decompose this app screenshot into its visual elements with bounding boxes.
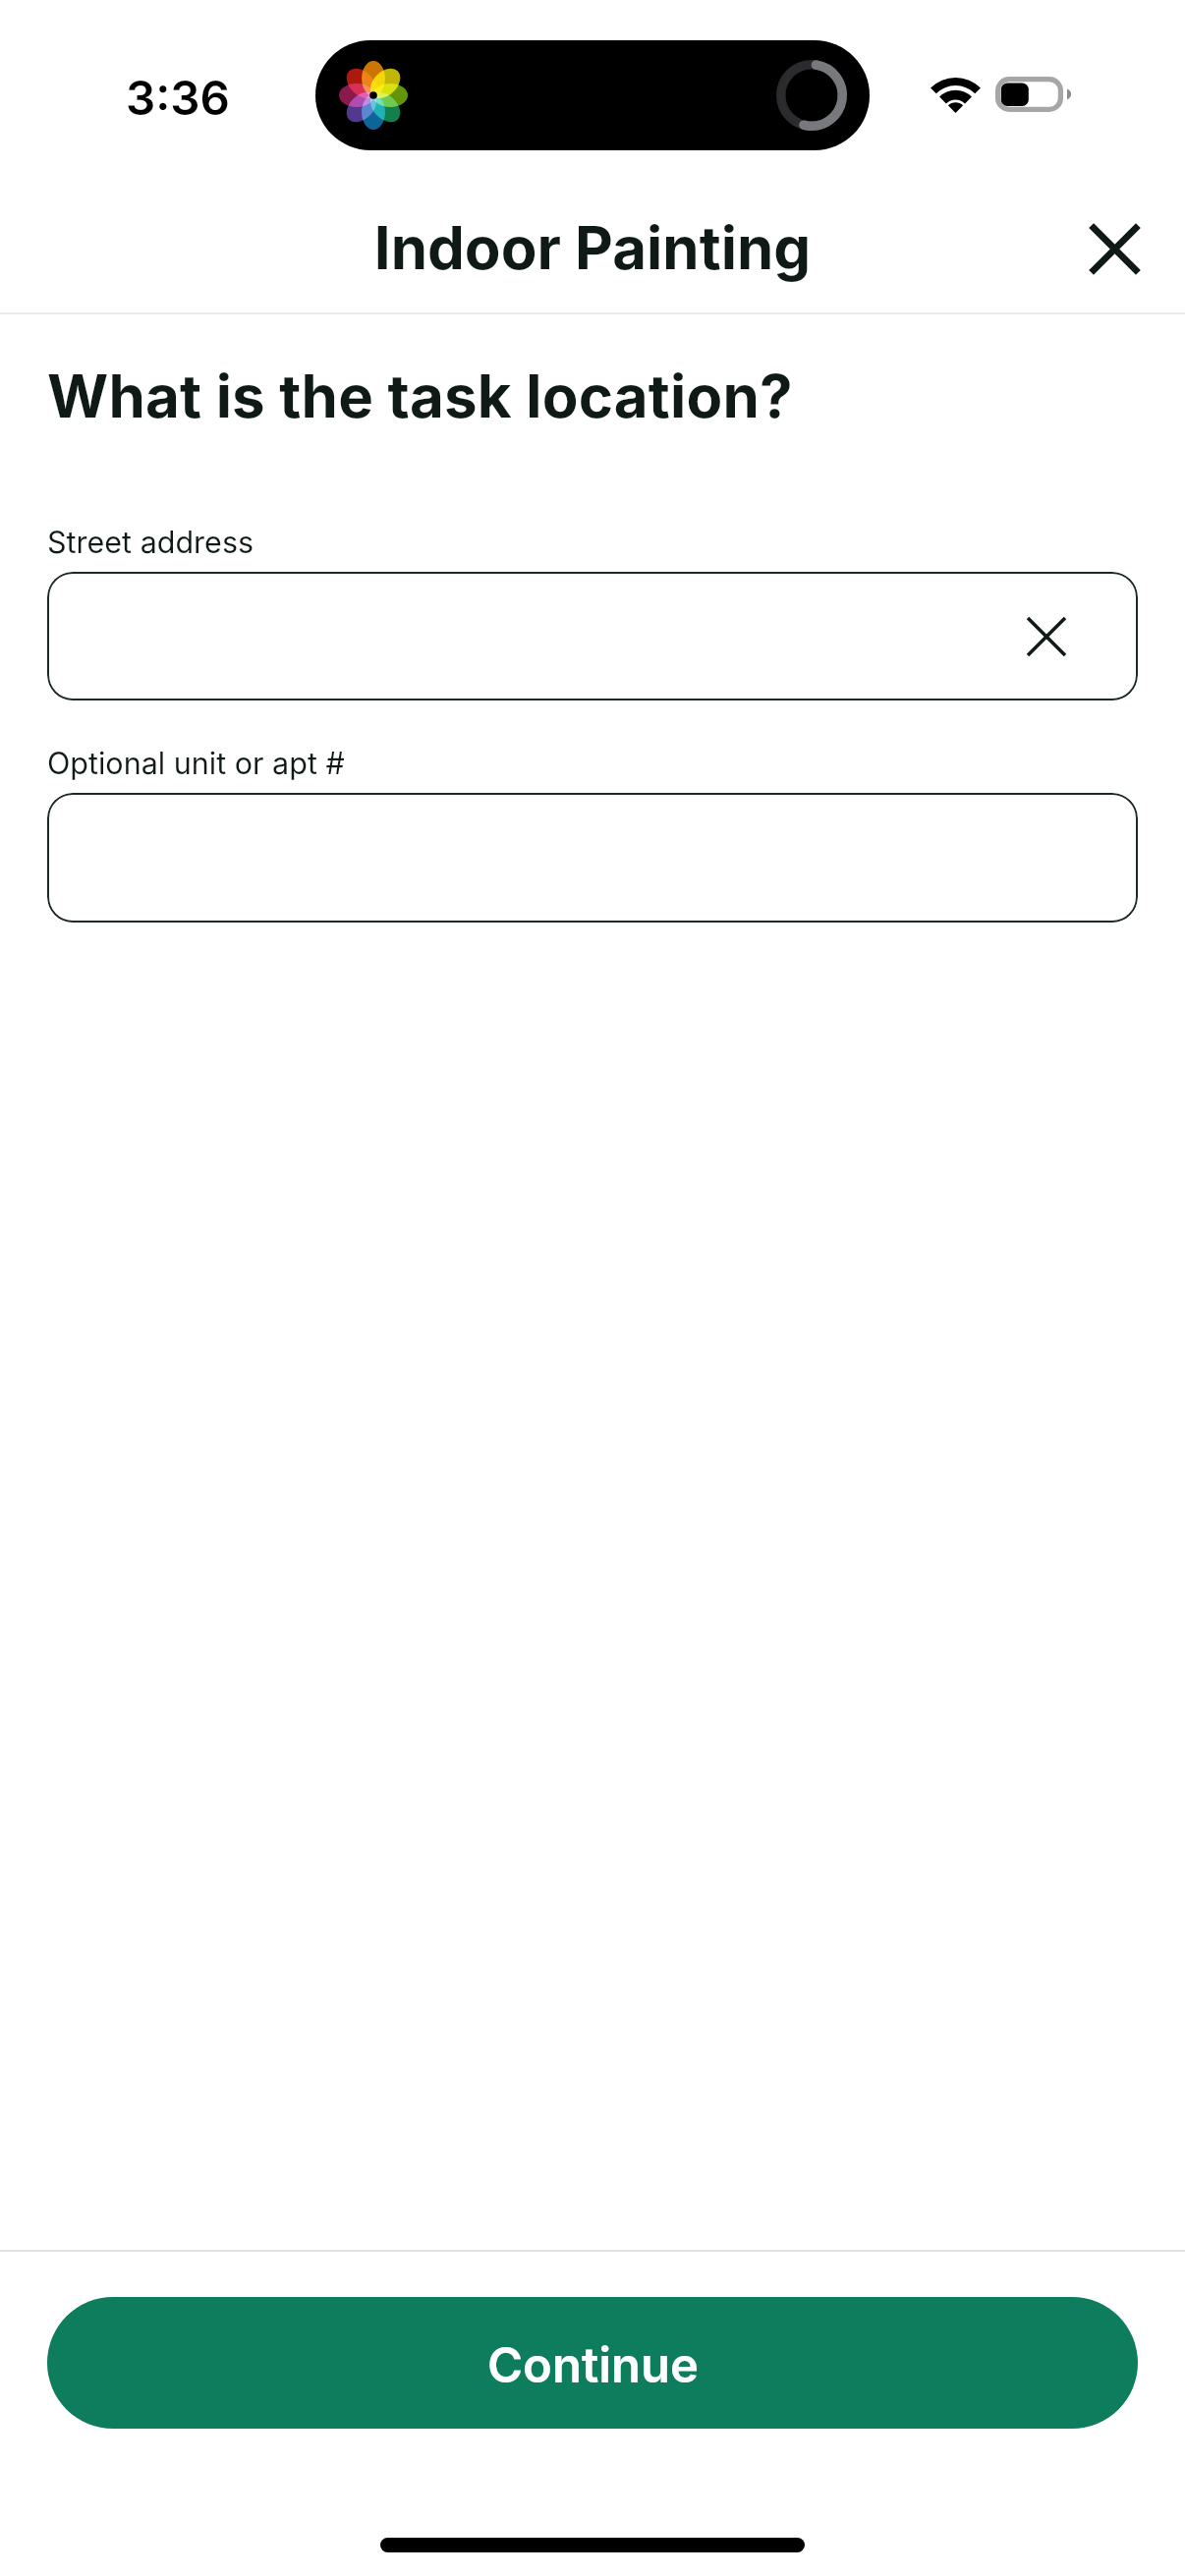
button[interactable]: Continue (47, 2297, 1138, 2429)
button[interactable]: Close (1066, 200, 1162, 297)
staticText: Street address (47, 524, 254, 560)
staticText: Indoor Painting (0, 212, 1185, 284)
button[interactable]: Clear street address (47, 572, 1138, 700)
button[interactable]: Clear street address (1014, 604, 1079, 669)
staticText: What is the task location? (47, 361, 793, 432)
button[interactable] (47, 793, 1138, 923)
staticText: 3:36 (126, 70, 230, 126)
staticText: Continue (487, 2336, 699, 2394)
staticText: Optional unit or apt # (47, 745, 345, 781)
